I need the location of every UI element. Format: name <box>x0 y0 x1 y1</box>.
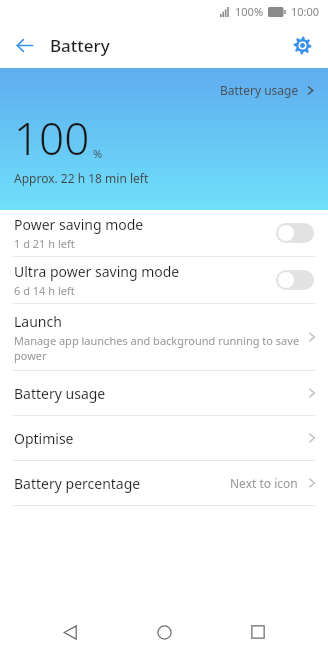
staticText: Next to icon <box>230 475 298 491</box>
staticText: 100 <box>14 108 90 168</box>
staticText: Ultra power saving mode <box>14 262 180 281</box>
staticText: Battery <box>50 34 110 57</box>
staticText: Manage app launches and background runni… <box>14 333 300 363</box>
staticText: 1 d 21 h left <box>14 236 75 251</box>
button[interactable]: Launch <box>0 304 328 370</box>
button[interactable]: Back <box>6 27 42 63</box>
staticText: 100% <box>235 4 264 19</box>
button[interactable]: Optimise <box>0 416 328 460</box>
button[interactable]: Back <box>46 608 94 656</box>
button[interactable]: Home <box>140 608 188 656</box>
button[interactable]: Battery percentage <box>0 461 328 505</box>
staticText: Power saving mode <box>14 215 144 234</box>
button[interactable]: Ultra power saving mode <box>0 257 328 303</box>
staticText: 6 d 14 h left <box>14 283 75 298</box>
staticText: 10:00 <box>291 4 320 19</box>
button[interactable]: Toggle <box>276 223 314 243</box>
staticText: Battery percentage <box>14 474 141 493</box>
staticText: Launch <box>14 312 62 331</box>
staticText: % <box>93 146 103 161</box>
button[interactable]: Battery usage <box>0 371 328 415</box>
button[interactable]: Power saving mode <box>0 210 328 256</box>
button[interactable]: Recent apps <box>234 608 282 656</box>
staticText: Approx. 22 h 18 min left <box>14 170 149 186</box>
button[interactable]: Toggle <box>276 270 314 290</box>
button[interactable]: Battery usage <box>218 80 318 100</box>
button[interactable]: Settings <box>284 27 320 63</box>
staticText: Optimise <box>14 429 74 448</box>
staticText: Battery usage <box>14 384 106 403</box>
staticText: Battery usage <box>220 82 299 98</box>
